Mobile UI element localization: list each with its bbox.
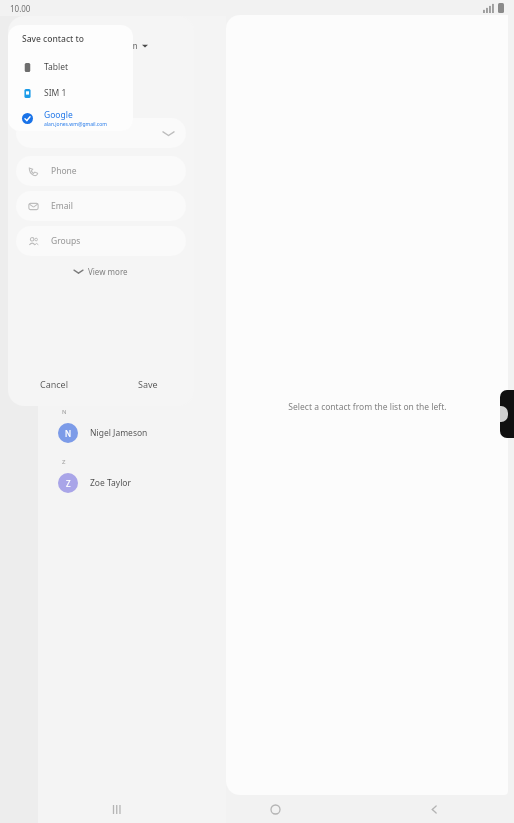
button[interactable]: Cancel <box>8 362 101 406</box>
staticText: Save <box>138 378 158 390</box>
staticText: N <box>62 408 67 416</box>
button[interactable]: SIM 1 <box>8 80 133 106</box>
button[interactable]: Phone <box>16 156 186 186</box>
button[interactable]: Back <box>355 795 514 823</box>
staticText: Email <box>51 200 73 212</box>
staticText: SIM 1 <box>44 87 67 99</box>
staticText: alan.jones.wm@gmail.com <box>44 121 107 128</box>
button[interactable]: View more <box>8 261 194 281</box>
staticText: Z <box>62 458 66 466</box>
button[interactable]: Recents <box>38 795 196 823</box>
button[interactable]: Email <box>16 191 186 221</box>
button[interactable]: Groups <box>16 226 186 256</box>
staticText: Tablet <box>44 61 69 73</box>
staticText: m <box>130 40 138 51</box>
staticText: Phone <box>51 165 77 177</box>
button[interactable]: Z <box>38 466 226 500</box>
staticText: Select a contact from the list on the le… <box>288 401 447 413</box>
staticText: Cancel <box>40 378 69 390</box>
button[interactable]: Save <box>101 362 194 406</box>
staticText: Nigel Jameson <box>90 427 148 439</box>
staticText: Z <box>66 478 71 489</box>
staticText: Google <box>44 109 73 121</box>
button[interactable]: N <box>38 416 226 450</box>
button[interactable]: Tablet <box>8 54 133 80</box>
button[interactable] <box>16 118 186 148</box>
staticText: 10.00 <box>10 3 31 14</box>
button[interactable]: Edge panel <box>500 390 514 438</box>
button[interactable]: Home <box>196 795 355 823</box>
button[interactable]: Google <box>8 106 133 131</box>
staticText: N <box>65 428 72 439</box>
staticText: Zoe Taylor <box>90 477 132 489</box>
staticText: View more <box>88 266 128 277</box>
staticText: Save contact to <box>22 33 85 45</box>
staticText: Groups <box>51 235 81 247</box>
